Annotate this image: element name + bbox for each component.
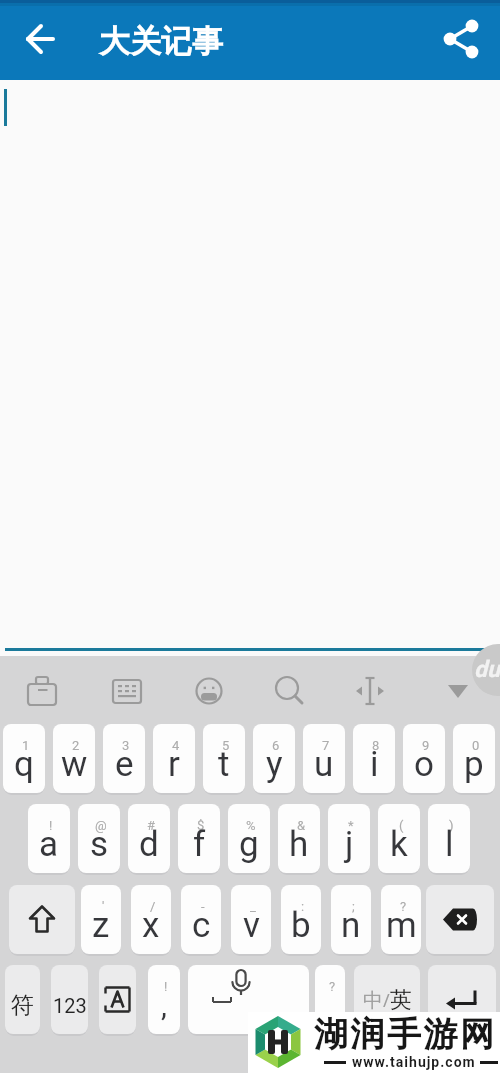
staticText: & xyxy=(297,818,306,833)
button[interactable]: 中/英 xyxy=(354,965,420,1034)
button[interactable]: ? xyxy=(315,965,345,1034)
button[interactable]: $ xyxy=(178,804,220,873)
button[interactable] xyxy=(0,80,500,656)
button[interactable] xyxy=(103,667,151,715)
staticText: 1 xyxy=(22,738,30,753)
staticText: 8 xyxy=(372,738,380,753)
staticText: ? xyxy=(329,979,336,994)
button[interactable]: % xyxy=(228,804,270,873)
staticText: n xyxy=(341,905,361,946)
staticText: z xyxy=(92,905,110,946)
staticText: @ xyxy=(95,818,107,833)
staticText: ) xyxy=(449,818,454,833)
staticText: 中/英 xyxy=(363,986,412,1014)
button[interactable]: ? xyxy=(381,885,421,954)
button[interactable] xyxy=(434,667,482,715)
staticText: i xyxy=(370,744,379,785)
staticText: c xyxy=(192,905,211,946)
staticText: , xyxy=(161,988,167,1023)
staticText: h xyxy=(289,824,309,865)
button[interactable]: 0 xyxy=(453,724,495,793)
staticText: ! xyxy=(164,979,168,994)
staticText: 4 xyxy=(172,738,180,753)
staticText: 符 xyxy=(11,991,34,1020)
staticText: 湖润手游网 xyxy=(314,1013,497,1056)
staticText: q xyxy=(14,744,34,785)
button[interactable]: : xyxy=(281,885,321,954)
button[interactable]: 5 xyxy=(203,724,245,793)
staticText: 123 xyxy=(53,994,87,1017)
button[interactable] xyxy=(426,885,494,954)
staticText: f xyxy=(193,824,206,865)
staticText: w xyxy=(61,744,88,785)
staticText: ! xyxy=(49,818,53,833)
staticText: u xyxy=(314,744,334,785)
button[interactable]: 8 xyxy=(353,724,395,793)
staticText: 9 xyxy=(422,738,430,753)
button[interactable]: ) xyxy=(428,804,470,873)
staticText: 5 xyxy=(222,738,230,753)
staticText: _ xyxy=(250,899,256,914)
button[interactable] xyxy=(428,965,496,1034)
button[interactable]: 4 xyxy=(153,724,195,793)
staticText: m xyxy=(386,905,417,946)
staticText: 2 xyxy=(72,738,80,753)
button[interactable]: & xyxy=(278,804,320,873)
button[interactable]: ! xyxy=(148,965,180,1034)
staticText: b xyxy=(291,905,311,946)
button[interactable]: 6 xyxy=(253,724,295,793)
staticText: g xyxy=(239,824,259,865)
button[interactable]: 3 xyxy=(103,724,145,793)
staticText: r xyxy=(168,744,180,785)
button[interactable] xyxy=(9,885,75,954)
button[interactable]: 1 xyxy=(3,724,45,793)
staticText: - xyxy=(201,899,205,914)
button[interactable]: 2 xyxy=(53,724,95,793)
staticText: www.taihujp.com xyxy=(352,1054,476,1070)
button[interactable]: ! xyxy=(28,804,70,873)
button[interactable]: _ xyxy=(231,885,271,954)
staticText: 大关记事 xyxy=(99,22,223,61)
staticText: 6 xyxy=(272,738,280,753)
staticText: $ xyxy=(197,818,205,833)
button[interactable]: / xyxy=(131,885,171,954)
staticText: / xyxy=(150,899,156,914)
button[interactable]: ' xyxy=(81,885,121,954)
staticText: % xyxy=(246,818,256,833)
staticText: ' xyxy=(102,899,105,914)
button[interactable] xyxy=(265,667,313,715)
staticText: s xyxy=(90,824,109,865)
button[interactable]: * xyxy=(328,804,370,873)
staticText: t xyxy=(218,744,230,785)
button[interactable] xyxy=(185,667,233,715)
staticText: du xyxy=(474,656,500,683)
staticText: e xyxy=(115,744,134,785)
staticText: j xyxy=(345,824,354,865)
button[interactable]: ( xyxy=(378,804,420,873)
staticText: d xyxy=(139,824,159,865)
button[interactable] xyxy=(18,667,66,715)
staticText: 3 xyxy=(122,738,130,753)
button[interactable]: 9 xyxy=(403,724,445,793)
staticText: * xyxy=(348,818,354,833)
button[interactable]: ; xyxy=(331,885,371,954)
staticText: k xyxy=(390,824,408,865)
staticText: a xyxy=(39,824,59,865)
button[interactable]: 7 xyxy=(303,724,345,793)
button[interactable]: @ xyxy=(78,804,120,873)
button[interactable] xyxy=(346,667,394,715)
button[interactable]: 符 xyxy=(5,965,40,1034)
staticText: v xyxy=(243,905,260,946)
staticText: : xyxy=(301,899,305,914)
button[interactable] xyxy=(188,965,309,1034)
button[interactable]: 123 xyxy=(51,965,88,1034)
button[interactable]: - xyxy=(181,885,221,954)
staticText: y xyxy=(266,744,283,785)
staticText: p xyxy=(464,744,484,785)
staticText: o xyxy=(414,744,434,785)
button[interactable]: # xyxy=(128,804,170,873)
staticText: # xyxy=(147,818,156,833)
button[interactable] xyxy=(437,15,485,63)
button[interactable] xyxy=(99,965,136,1034)
button[interactable] xyxy=(16,16,64,64)
